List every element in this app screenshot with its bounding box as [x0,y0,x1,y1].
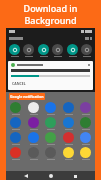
button[interactable]: CANCEL [8,61,93,90]
button[interactable]: App 2 [28,147,39,160]
button[interactable]: App 5 [80,117,91,130]
button[interactable]: Quick setting 0 [9,44,20,55]
button[interactable]: Quick setting 5 [81,44,92,55]
button[interactable]: Home [47,172,55,180]
button[interactable]: App 3 [45,147,56,160]
button[interactable]: Quick setting 4 [67,44,78,55]
staticText: Google notification [10,94,44,99]
button[interactable]: App 1 [10,132,21,145]
button[interactable]: App 1 [10,117,21,130]
button[interactable]: App 4 [63,132,74,145]
button[interactable]: App 3 [45,117,56,130]
button[interactable]: App 1 [10,147,21,160]
button[interactable]: App 4 [63,102,74,115]
button[interactable]: App 2 [28,102,39,115]
staticText: Download in Background [0,2,101,26]
button[interactable]: Back [22,172,30,180]
button[interactable]: App 4 [63,117,74,130]
button[interactable]: App 3 [45,132,56,145]
button[interactable]: Quick setting 2 [38,44,49,55]
button[interactable]: Recents [71,172,79,180]
button[interactable]: App 5 [80,147,91,160]
button[interactable]: App 2 [28,117,39,130]
button[interactable]: App 3 [45,102,56,115]
button[interactable]: Quick setting 1 [23,44,34,55]
button[interactable]: App 1 [10,102,21,115]
button[interactable]: Quick setting 3 [52,44,63,55]
button[interactable]: App 4 [63,147,74,160]
staticText: CANCEL [12,81,26,86]
button[interactable]: App 5 [80,102,91,115]
button[interactable]: App 2 [28,132,39,145]
button[interactable]: CANCEL [11,80,27,87]
button[interactable]: App 5 [80,132,91,145]
